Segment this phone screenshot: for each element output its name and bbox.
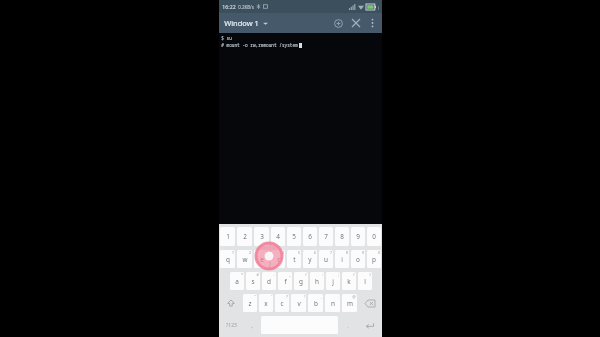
staticText: 9 (362, 250, 364, 255)
staticText: u (324, 255, 328, 264)
staticText: j (332, 277, 334, 286)
staticText: w (242, 255, 248, 264)
button[interactable]: ( (342, 272, 356, 290)
button[interactable]: . (325, 294, 340, 312)
button[interactable]: ' (259, 294, 273, 312)
button[interactable]: 7 (319, 250, 333, 268)
button[interactable]: 6 (303, 250, 317, 268)
staticText: c (280, 299, 284, 308)
button[interactable]: Close window (347, 14, 365, 32)
staticText: , (321, 294, 322, 299)
staticText: m (347, 299, 353, 308)
staticText: 5 (292, 232, 296, 241)
button[interactable]: 0 (367, 250, 381, 268)
button[interactable]: 2 (237, 227, 252, 246)
button[interactable]: 7 (319, 227, 333, 246)
button[interactable]: 9 (351, 227, 365, 246)
staticText: ; (338, 272, 339, 277)
staticText: p (372, 255, 376, 264)
staticText: * (241, 272, 243, 277)
staticText: ( (353, 272, 355, 277)
button[interactable]: Window 1 (219, 16, 273, 30)
staticText: @ (352, 294, 356, 299)
button[interactable]: 9 (351, 250, 365, 268)
button[interactable]: 1 (220, 250, 235, 268)
staticText: y (308, 255, 312, 264)
button[interactable]: _ (278, 272, 292, 290)
button[interactable]: Backspace (359, 293, 381, 313)
staticText: 8 (340, 232, 344, 241)
staticText: " (254, 294, 256, 299)
staticText: | (377, 5, 380, 10)
staticText: 5 (298, 250, 300, 255)
button[interactable]: ? (275, 294, 289, 312)
staticText: 4 (282, 250, 284, 255)
staticText: b (314, 299, 318, 308)
button[interactable]: " (243, 294, 257, 312)
button[interactable]: ; (326, 272, 340, 290)
button[interactable]: ) (358, 272, 372, 290)
button[interactable]: Add window (329, 14, 347, 32)
button[interactable]: 5 (287, 227, 301, 246)
staticText: 3 (260, 232, 264, 241)
button[interactable]: 5 (287, 250, 301, 268)
staticText: z (248, 299, 252, 308)
button[interactable]: 8 (335, 227, 349, 246)
staticText: e (260, 255, 264, 264)
button[interactable]: 4 (271, 227, 285, 246)
staticText: ? (286, 294, 288, 299)
staticText: s (251, 277, 255, 286)
button[interactable]: 4 (271, 250, 285, 268)
button[interactable]: 3 (254, 227, 269, 246)
button[interactable]: More options (365, 16, 379, 30)
button[interactable]: 2 (237, 250, 252, 268)
button[interactable]: # (246, 272, 260, 290)
button[interactable]: 8 (335, 250, 349, 268)
staticText: ?123 (226, 322, 237, 329)
staticText: t (293, 255, 296, 264)
staticText: 6 (314, 250, 316, 255)
button[interactable]: : (310, 272, 324, 290)
staticText: 0 (378, 250, 380, 255)
staticText: # (256, 272, 259, 277)
staticText: v (297, 299, 301, 308)
staticText: $ su (221, 35, 232, 41)
staticText: 0 (372, 232, 376, 241)
staticText: l (364, 277, 366, 286)
button[interactable]: ?123 (220, 315, 243, 335)
staticText: q (226, 255, 230, 264)
staticText: ) (369, 272, 371, 277)
staticText: 2 (249, 250, 251, 255)
button[interactable]: 3 (254, 250, 269, 268)
staticText: k (347, 277, 351, 286)
button[interactable]: ! (291, 294, 306, 312)
staticText: d (267, 277, 271, 286)
button[interactable]: * (230, 272, 244, 290)
staticText: _ (289, 272, 291, 277)
staticText: 3 (266, 250, 268, 255)
button[interactable]: / (294, 272, 308, 290)
staticText: n (331, 299, 335, 308)
staticText: : (322, 272, 323, 277)
button[interactable]: Enter (357, 315, 381, 335)
staticText: 16:22 (222, 3, 236, 10)
staticText: i (341, 255, 343, 264)
button[interactable]: 1 (220, 227, 235, 246)
button[interactable]: , (308, 294, 323, 312)
staticText: g (299, 277, 303, 286)
staticText: a (235, 277, 239, 286)
staticText: 7 (324, 232, 328, 241)
button[interactable]: 0 (367, 227, 381, 246)
button[interactable]: - (262, 272, 276, 290)
staticText: 4 (276, 232, 280, 241)
staticText: # mount -o rw,remount /system (221, 42, 298, 48)
button[interactable]: 6 (303, 227, 317, 246)
button[interactable]: Shift (220, 293, 241, 313)
button[interactable]: @ (342, 294, 357, 312)
staticText: 8 (346, 250, 348, 255)
staticText: , (251, 322, 253, 329)
staticText: 6 (308, 232, 312, 241)
